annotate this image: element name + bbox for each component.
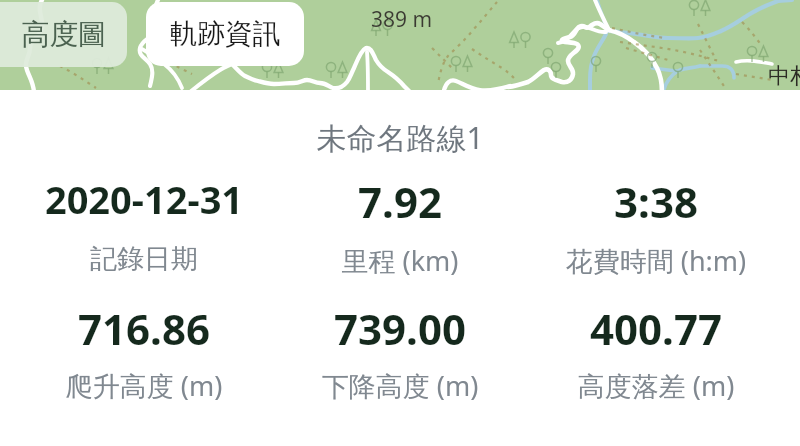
staticText: 400.77: [528, 300, 784, 357]
staticText: 389 m: [371, 5, 433, 34]
staticText: 記錄日期: [16, 242, 272, 276]
button[interactable]: 400.77: [528, 300, 784, 403]
staticText: 未命名路線1: [0, 117, 800, 158]
staticText: 高度落差 (m): [528, 367, 784, 404]
staticText: 軌跡資訊: [170, 17, 280, 52]
staticText: 中村: [768, 62, 800, 90]
staticText: 716.86: [16, 300, 272, 357]
button[interactable]: 軌跡資訊: [146, 2, 304, 66]
staticText: 739.00: [272, 300, 528, 357]
staticText: 花費時間 (h:m): [528, 242, 784, 279]
button[interactable]: 7.92: [272, 173, 528, 278]
button[interactable]: 3:38: [528, 173, 784, 278]
button[interactable]: 739.00: [272, 300, 528, 403]
button[interactable]: 高度圖: [0, 2, 127, 67]
staticText: 2020-12-31: [16, 173, 272, 225]
staticText: 7.92: [272, 173, 528, 230]
staticText: 3:38: [528, 173, 784, 230]
button[interactable]: 716.86: [16, 300, 272, 403]
staticText: 高度圖: [21, 17, 107, 53]
button[interactable]: 2020-12-31: [16, 173, 272, 278]
staticText: 下降高度 (m): [272, 367, 528, 404]
staticText: 爬升高度 (m): [16, 367, 272, 404]
staticText: 里程 (km): [272, 242, 528, 279]
